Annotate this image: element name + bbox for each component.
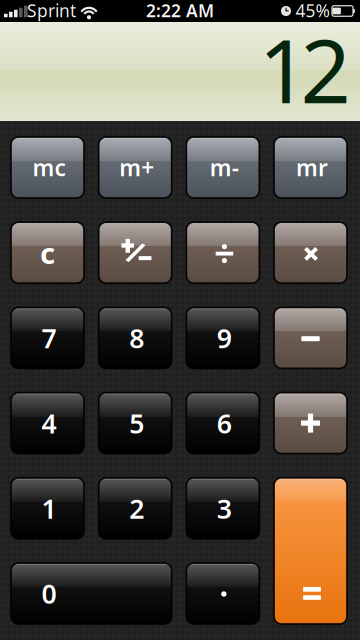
- staticText: 4: [41, 405, 56, 441]
- button[interactable]: c: [143, 289, 216, 350]
- button[interactable]: Plus minus: [143, 289, 216, 350]
- button[interactable]: Equals: [143, 247, 216, 393]
- button[interactable]: Plus: [143, 289, 216, 350]
- staticText: m+: [119, 152, 154, 182]
- button[interactable]: m-: [143, 289, 216, 350]
- staticText: 7: [41, 320, 56, 356]
- staticText: mc: [32, 152, 65, 182]
- button[interactable]: 8: [143, 289, 216, 350]
- staticText: 6: [217, 405, 232, 441]
- staticText: 9: [217, 320, 232, 356]
- staticText: 12: [258, 11, 350, 127]
- button[interactable]: 7: [143, 289, 216, 350]
- staticText: 2: [129, 491, 144, 526]
- button[interactable]: 0: [100, 289, 260, 350]
- button[interactable]: mr: [143, 289, 216, 350]
- button[interactable]: Minus: [143, 289, 216, 350]
- staticText: 2:22 AM: [146, 0, 214, 22]
- staticText: 1: [41, 491, 56, 526]
- button[interactable]: 9: [143, 289, 216, 350]
- staticText: 45%: [295, 0, 329, 22]
- button[interactable]: 4: [143, 289, 216, 350]
- staticText: 3: [217, 491, 232, 526]
- button[interactable]: 1: [143, 289, 216, 350]
- button[interactable]: mc: [143, 289, 216, 350]
- staticText: Sprint: [27, 0, 76, 22]
- staticText: mr: [296, 152, 328, 182]
- button[interactable]: 3: [143, 289, 216, 350]
- staticText: c: [40, 233, 55, 272]
- button[interactable]: m+: [143, 289, 216, 350]
- button[interactable]: 5: [143, 289, 216, 350]
- button[interactable]: Decimal point: [143, 289, 216, 350]
- button[interactable]: Multiply: [143, 289, 216, 350]
- staticText: 8: [129, 320, 144, 356]
- button[interactable]: 2: [143, 289, 216, 350]
- staticText: 0: [41, 576, 56, 611]
- staticText: m-: [210, 152, 239, 182]
- button[interactable]: 6: [143, 289, 216, 350]
- staticText: 5: [129, 405, 144, 441]
- button[interactable]: Divide: [143, 289, 216, 350]
